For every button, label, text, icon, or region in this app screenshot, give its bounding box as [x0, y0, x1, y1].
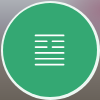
button[interactable]: Article — [3, 3, 97, 97]
